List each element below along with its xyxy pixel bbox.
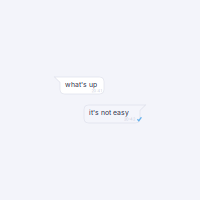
- staticText: 20:42: [124, 117, 135, 121]
- button[interactable]: it's not easy: [84, 105, 146, 123]
- staticText: what's up: [65, 80, 97, 89]
- staticText: 20:41: [91, 88, 102, 93]
- button[interactable]: what's up: [54, 77, 104, 94]
- staticText: it's not easy: [89, 108, 129, 117]
